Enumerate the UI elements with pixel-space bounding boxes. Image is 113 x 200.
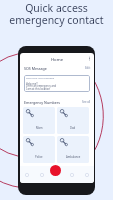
staticText: Home [20, 57, 94, 63]
staticText: Help me!! I'm in an emergency and I am a… [26, 82, 57, 91]
button[interactable]: Profile [79, 166, 94, 183]
button[interactable]: See all [82, 100, 91, 104]
button[interactable]: Mom [23, 107, 55, 134]
staticText: Type your SOS message [26, 76, 55, 79]
staticText: Police [35, 155, 43, 159]
button[interactable]: Dad [57, 107, 89, 134]
button[interactable]: Home [20, 166, 34, 183]
button[interactable]: Contacts [34, 166, 49, 183]
button[interactable]: SOS emergency call [50, 165, 61, 176]
button[interactable]: More options [87, 56, 92, 61]
button[interactable]: Ambulance [57, 136, 89, 163]
staticText: Dad [70, 126, 76, 130]
staticText: Quick access emergency contact [9, 1, 104, 27]
button[interactable]: Type your SOS message [24, 75, 90, 92]
button[interactable]: Alerts [64, 166, 79, 183]
staticText: Mom [36, 126, 43, 130]
button[interactable]: Police [23, 136, 55, 163]
button[interactable]: Edit [85, 66, 91, 70]
staticText: SOS Message [24, 66, 47, 71]
staticText: Ambulance [66, 155, 81, 159]
staticText: Emergency Numbers [24, 100, 61, 105]
